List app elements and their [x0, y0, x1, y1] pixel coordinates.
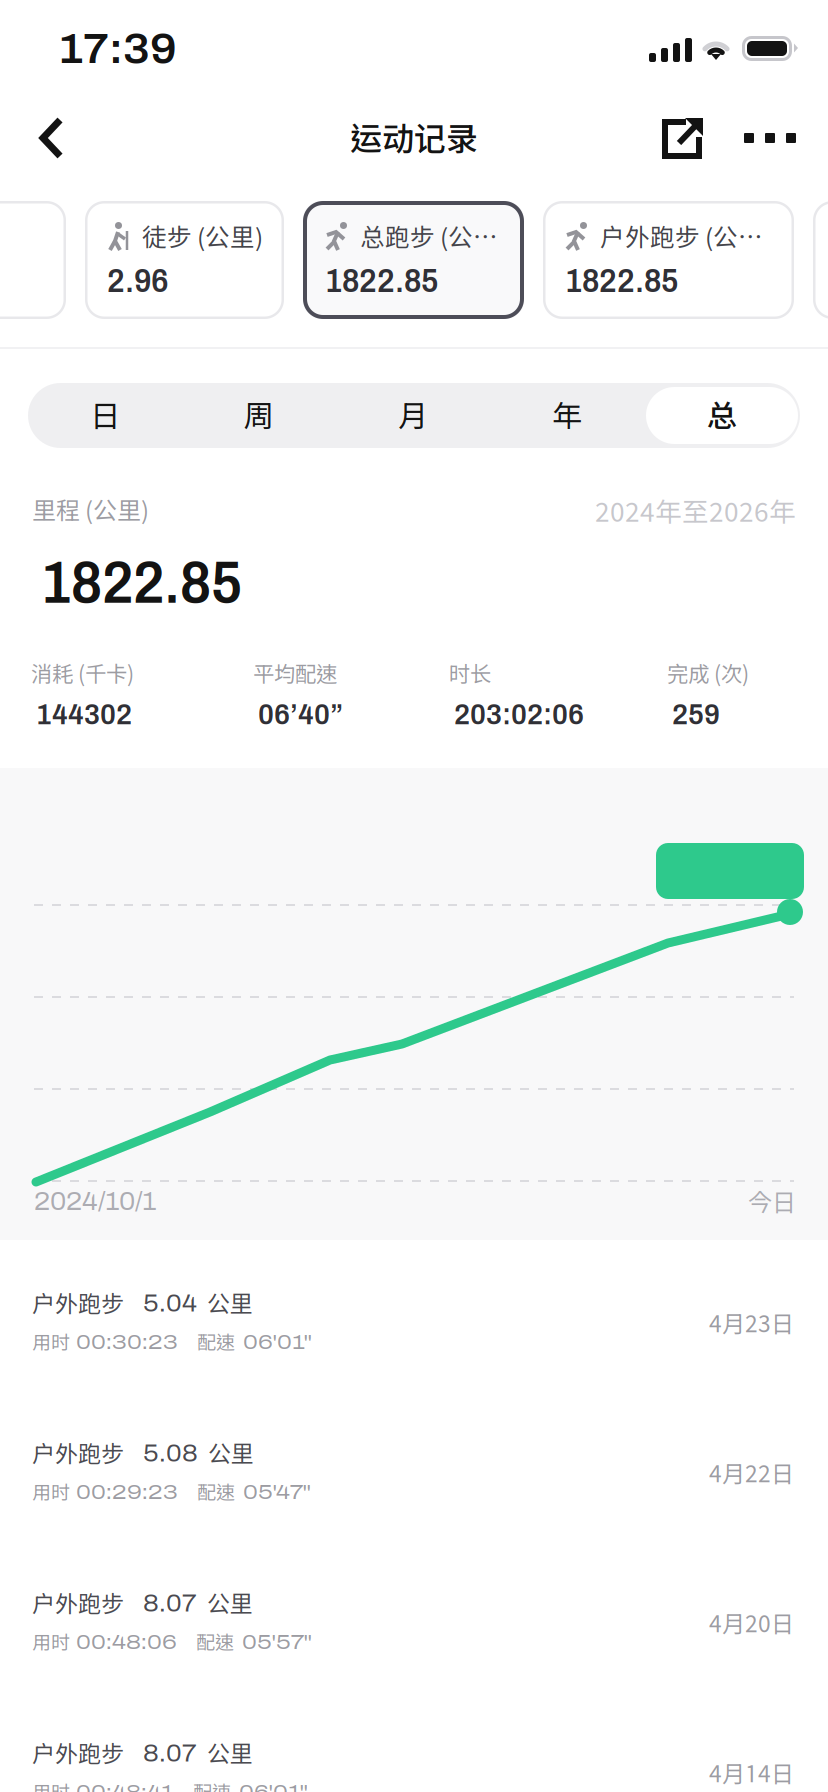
button[interactable]: 日	[28, 383, 182, 448]
button[interactable]: 年	[490, 383, 644, 448]
staticText: 06’40”	[258, 698, 343, 731]
staticText: 00:30:23	[76, 1331, 178, 1353]
staticText: 用时	[32, 1331, 70, 1353]
staticText: 5.08	[143, 1440, 198, 1467]
staticText: 户外跑步	[32, 1440, 124, 1467]
staticText: 06'01''	[243, 1331, 312, 1353]
staticText: 05'57''	[242, 1631, 312, 1653]
staticText: 运动记录	[350, 119, 478, 157]
staticText: 4月14日	[709, 1760, 794, 1787]
staticText: 用时	[32, 1481, 70, 1503]
staticText: 2024/10/1	[34, 1188, 156, 1215]
staticText: 1822.85	[565, 263, 679, 299]
staticText: 00:48:06	[76, 1631, 177, 1653]
button[interactable]: 周	[182, 383, 336, 448]
staticText: 用时	[32, 1631, 70, 1653]
staticText: 259	[672, 698, 720, 731]
staticText: 配速	[197, 1481, 235, 1503]
button[interactable]: 徒步 (公里)	[85, 201, 284, 319]
staticText: 户外跑步	[32, 1290, 124, 1317]
staticText: 公里	[207, 1590, 253, 1617]
staticText: 户外跑步 (公…	[600, 222, 763, 251]
staticText: 公里	[207, 1290, 253, 1317]
staticText: 完成 (次)	[667, 661, 749, 686]
staticText: 4月20日	[709, 1610, 794, 1637]
staticText: 4月22日	[709, 1460, 794, 1487]
staticText: 4月23日	[709, 1310, 794, 1337]
staticText: 户外跑步	[32, 1590, 124, 1617]
staticText: 配速	[197, 1331, 235, 1353]
staticText: 徒步 (公里)	[142, 222, 263, 251]
button[interactable]: 户外跑步	[0, 1540, 828, 1690]
staticText: 203:02:06	[454, 698, 584, 731]
staticText: 年	[552, 398, 582, 433]
staticText: 8.07	[143, 1590, 197, 1617]
staticText: 00:48:41	[76, 1781, 174, 1792]
staticText: 5.04	[143, 1290, 197, 1317]
button[interactable]: 户外跑步	[0, 1390, 828, 1540]
staticText: 时长	[449, 661, 491, 686]
button[interactable]: 总	[644, 383, 800, 448]
staticText: 2024年至2026年	[595, 496, 796, 527]
staticText: 今日	[748, 1188, 796, 1216]
staticText: 月	[398, 398, 428, 433]
staticText: 2.96	[107, 263, 169, 299]
staticText: 日	[90, 398, 120, 433]
staticText: 总	[707, 398, 737, 433]
button[interactable]: Share	[636, 92, 730, 184]
button[interactable]: 公里)	[0, 201, 66, 319]
staticText: 用时	[32, 1781, 70, 1792]
staticText: 里程 (公里)	[32, 496, 149, 524]
staticText: 00:29:23	[76, 1481, 178, 1503]
staticText: 17:39	[58, 26, 177, 72]
staticText: 06'01''	[239, 1781, 308, 1792]
staticText: 消耗 (千卡)	[31, 661, 134, 686]
staticText: 1822.85	[325, 263, 439, 299]
staticText: 8.07	[143, 1740, 197, 1767]
button[interactable]	[813, 201, 828, 319]
button[interactable]: 户外跑步	[0, 1690, 828, 1792]
staticText: 144302	[36, 698, 132, 731]
staticText: 公里	[207, 1740, 253, 1767]
button[interactable]: Back	[0, 92, 100, 184]
button[interactable]: 户外跑步	[0, 1240, 828, 1390]
button[interactable]: 月	[336, 383, 490, 448]
staticText: 总跑步 (公…	[360, 222, 498, 251]
button[interactable]: More options	[730, 92, 828, 184]
staticText: 平均配速	[253, 661, 337, 686]
staticText: 公里	[208, 1440, 254, 1467]
staticText: 户外跑步	[32, 1740, 124, 1767]
button[interactable]: 总跑步 (公…	[303, 201, 524, 319]
staticText: 配速	[196, 1631, 234, 1653]
staticText: 周	[244, 398, 274, 433]
staticText: 配速	[193, 1781, 231, 1792]
button[interactable]: 户外跑步 (公…	[543, 201, 794, 319]
staticText: 1822.85	[41, 550, 242, 615]
staticText: 05'47''	[243, 1481, 311, 1503]
